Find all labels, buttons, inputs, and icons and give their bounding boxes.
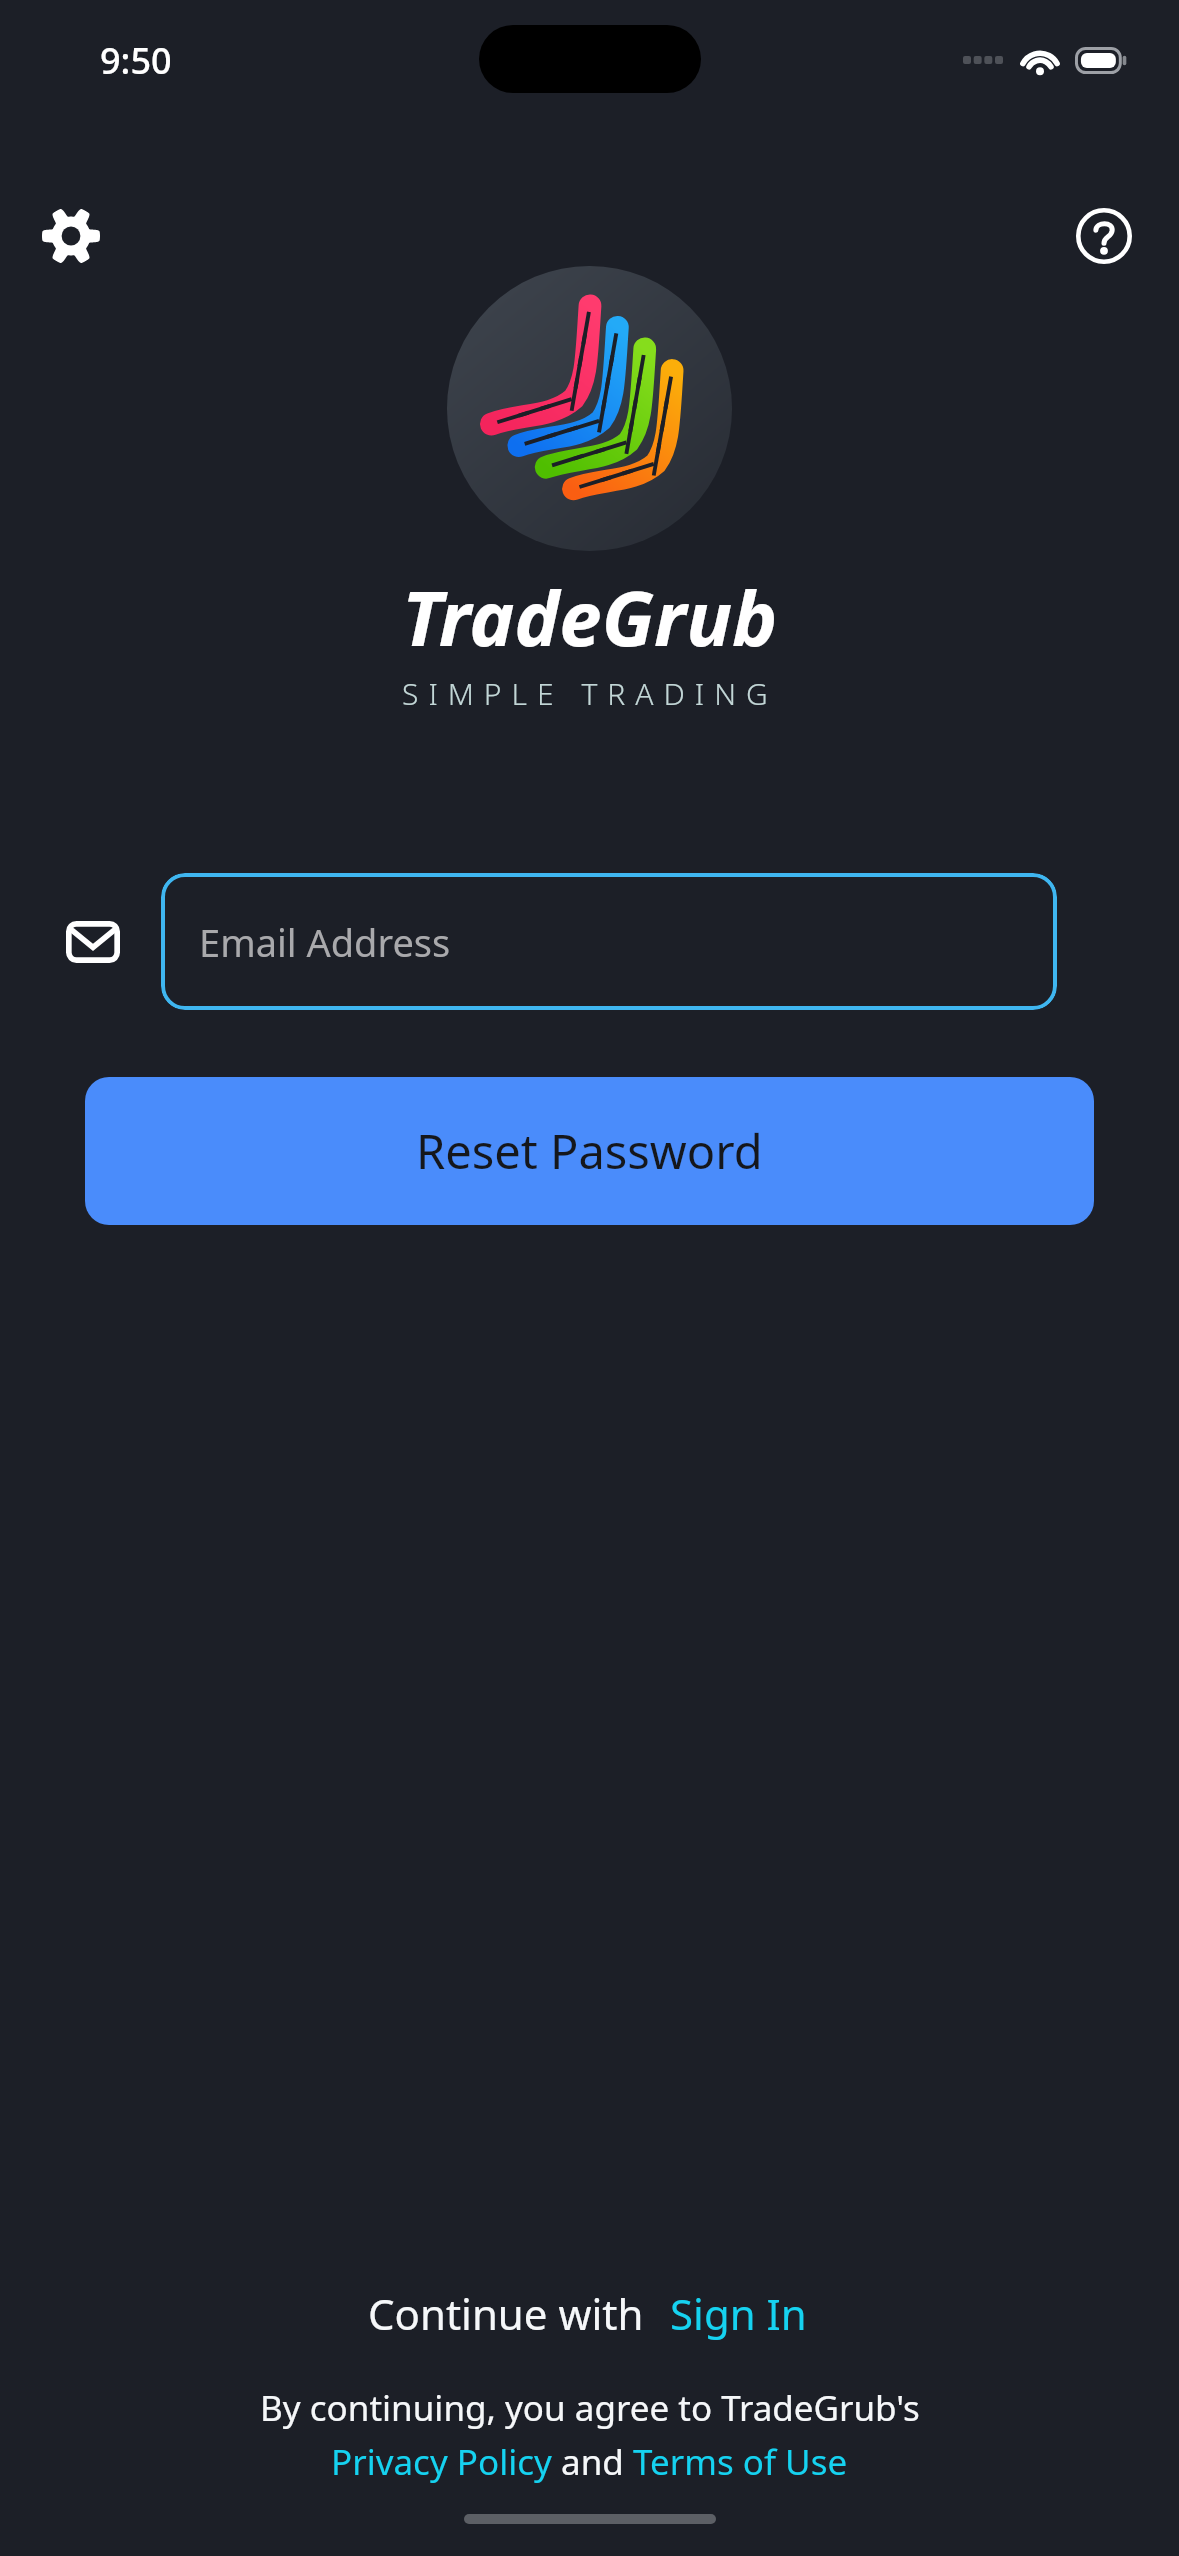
button[interactable]: Privacy Policy	[331, 2438, 552, 2486]
staticText: Privacy Policy	[331, 2438, 552, 2486]
button[interactable]: Settings	[16, 181, 126, 291]
staticText: Reset Password	[416, 1119, 763, 1183]
staticText: Continue with	[368, 2285, 644, 2342]
staticText: Email Address	[199, 916, 451, 968]
staticText: 9:50	[100, 36, 172, 85]
staticText: SIMPLE TRADING	[402, 673, 778, 714]
staticText: and	[552, 2438, 633, 2486]
button[interactable]: Sign In	[666, 2281, 811, 2346]
staticText: By continuing, you agree to TradeGrub's	[260, 2384, 920, 2432]
staticText: TradeGrub	[402, 565, 778, 669]
button[interactable]: Help	[1049, 181, 1159, 291]
staticText: Sign In	[670, 2285, 807, 2342]
staticText: Terms of Use	[633, 2438, 848, 2486]
button[interactable]: Email	[48, 897, 138, 987]
button[interactable]: Email Address	[161, 873, 1057, 1010]
button[interactable]: Reset Password	[85, 1077, 1094, 1225]
button[interactable]: Terms of Use	[633, 2438, 848, 2486]
